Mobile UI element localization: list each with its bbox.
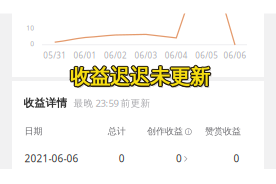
staticText: 0 [176, 152, 182, 165]
staticText: 收益迟迟未更新 [69, 63, 209, 89]
staticText: 0 [30, 39, 34, 48]
staticText: 0 [233, 152, 239, 165]
staticText: 收益迟迟未更新 [70, 65, 210, 91]
staticText: 收益迟迟未更新 [71, 63, 211, 89]
staticText: 总计 [108, 125, 126, 137]
staticText: 收益迟迟未更新 [69, 64, 209, 89]
staticText: 日期 [25, 125, 43, 137]
staticText: 收益详情 [23, 96, 67, 110]
staticText: 收益迟迟未更新 [70, 64, 210, 89]
staticText: i [188, 128, 189, 135]
staticText: 05/31 [43, 50, 66, 61]
staticText: 06/05 [195, 50, 218, 61]
staticText: 0 [119, 152, 125, 165]
button[interactable]: 0 [117, 152, 187, 165]
staticText: 2021-06-06 [24, 152, 78, 165]
staticText: 06/02 [104, 50, 127, 61]
staticText: 06/04 [165, 50, 188, 61]
staticText: 收益迟迟未更新 [71, 65, 211, 90]
staticText: 赞赏收益 [205, 125, 241, 137]
staticText: 收益迟迟未更新 [70, 63, 210, 88]
button[interactable]: 收益详情 [23, 96, 150, 110]
staticText: 10 [26, 23, 34, 32]
staticText: 收益迟迟未更新 [72, 66, 212, 91]
staticText: 06/01 [74, 50, 97, 61]
staticText: 06/03 [134, 50, 157, 61]
staticText: 06/06 [223, 50, 246, 61]
staticText: 收益迟迟未更新 [69, 65, 209, 90]
staticText: 收益迟迟未更新 [71, 64, 211, 89]
staticText: 创作收益 [147, 125, 183, 137]
staticText: 最晚 23:59 前更新 [73, 96, 150, 109]
